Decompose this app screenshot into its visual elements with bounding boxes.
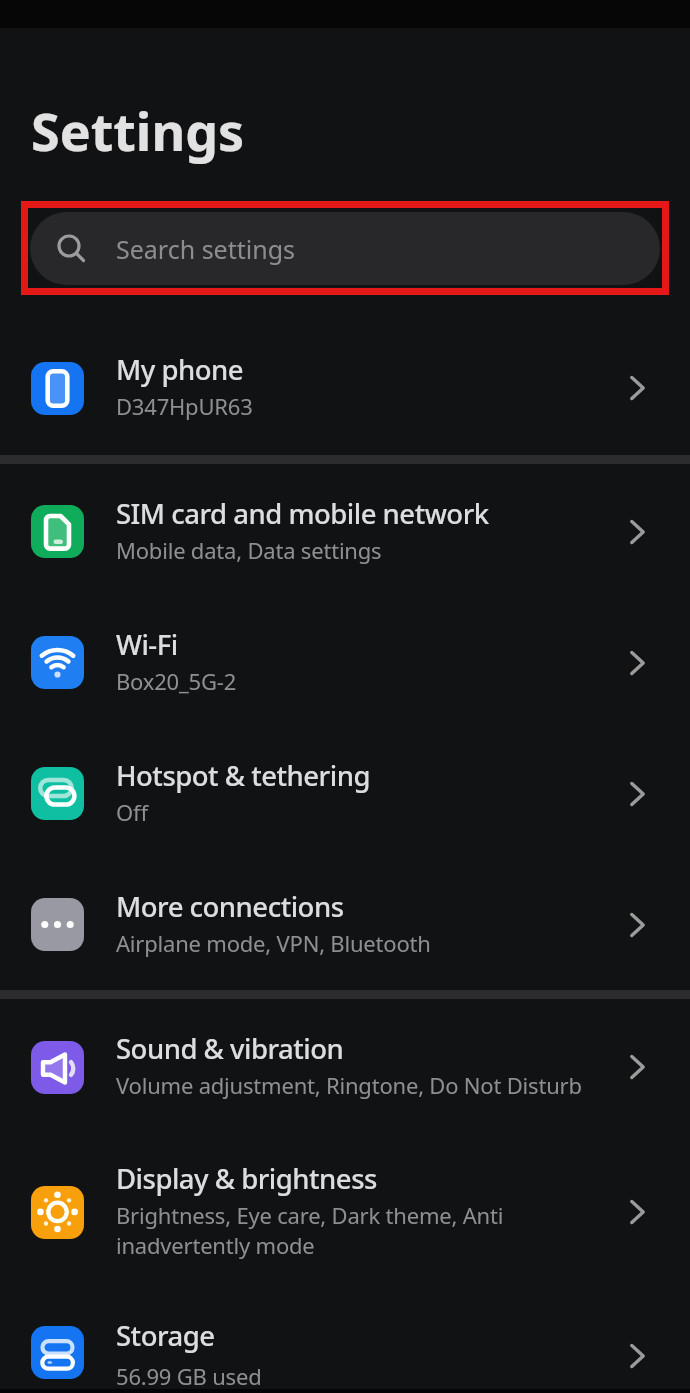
- staticText: Settings: [31, 95, 245, 166]
- button[interactable]: More connections: [0, 859, 690, 990]
- staticText: Display & brightness: [116, 1160, 377, 1197]
- button[interactable]: Search settings: [30, 212, 660, 285]
- staticText: Volume adjustment, Ringtone, Do Not Dist…: [116, 1070, 582, 1100]
- staticText: SIM card and mobile network: [116, 495, 489, 532]
- staticText: Mobile data, Data settings: [116, 535, 382, 565]
- staticText: Brightness, Eye care, Dark theme, Anti: [116, 1200, 504, 1230]
- staticText: Box20_5G-2: [116, 666, 237, 696]
- staticText: My phone: [116, 351, 244, 388]
- staticText: Airplane mode, VPN, Bluetooth: [116, 928, 431, 958]
- staticText: More connections: [116, 888, 344, 925]
- staticText: Hotspot & tethering: [116, 757, 370, 794]
- staticText: Wi-Fi: [116, 626, 178, 663]
- button[interactable]: Sound & vibration: [0, 999, 690, 1135]
- button[interactable]: Wi-Fi: [0, 597, 690, 728]
- button[interactable]: Storage: [0, 1289, 690, 1393]
- button[interactable]: My phone: [0, 323, 690, 453]
- staticText: Sound & vibration: [116, 1030, 344, 1067]
- button[interactable]: Hotspot & tethering: [0, 728, 690, 859]
- button[interactable]: Display & brightness: [0, 1135, 690, 1289]
- staticText: Storage: [116, 1317, 215, 1354]
- button[interactable]: SIM card and mobile network: [0, 466, 690, 597]
- staticText: Search settings: [116, 232, 296, 266]
- staticText: Off: [116, 797, 148, 827]
- staticText: 56.99 GB used: [116, 1361, 262, 1391]
- staticText: D347HpUR63: [116, 391, 253, 421]
- staticText: inadvertently mode: [116, 1230, 315, 1260]
